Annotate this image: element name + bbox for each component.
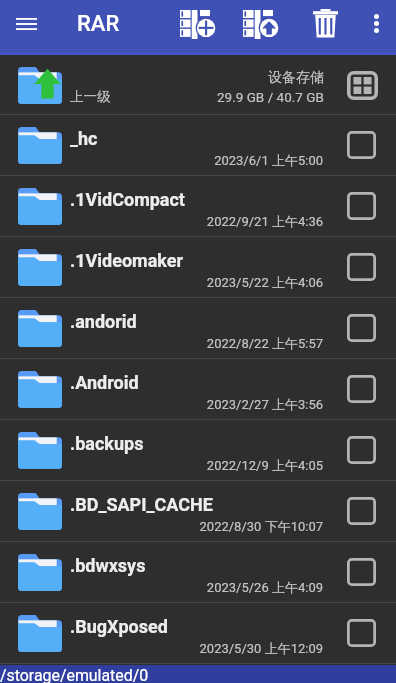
button[interactable]: .1VidCompact [0,176,396,237]
staticText: 2022/8/22 上午5:57 [70,335,323,351]
button[interactable]: .backups [0,420,396,481]
button[interactable]: Select item [347,420,396,481]
staticText: 2023/5/30 上午12:09 [70,640,323,656]
staticText: .BugXposed [70,616,168,637]
staticText: /storage/emulated/0 [0,666,149,683]
button[interactable]: 设备存储 [0,55,396,115]
staticText: .backups [70,433,144,454]
staticText: 2022/12/9 上午4:05 [70,457,323,473]
button[interactable]: Delete [303,0,347,47]
button[interactable]: Select item [347,603,396,664]
staticText: .BD_SAPI_CACHE [70,494,213,515]
button[interactable]: Extract archive [239,0,283,47]
button[interactable]: Switch to grid view [347,55,396,115]
staticText: 设备存储 [268,69,324,87]
staticText: _hc [70,128,98,149]
staticText: 2023/5/22 上午4:06 [70,274,323,290]
button[interactable]: .andorid [0,298,396,359]
button[interactable]: .1Videomaker [0,237,396,298]
button[interactable]: Select item [347,481,396,542]
staticText: 29.9 GB / 40.7 GB [217,89,324,105]
button[interactable]: Select item [347,542,396,603]
button[interactable]: .BugXposed [0,603,396,664]
staticText: .andorid [70,311,137,332]
button[interactable]: Add to archive [176,0,220,47]
button[interactable]: More options [356,0,396,47]
button[interactable]: .BD_SAPI_CACHE [0,481,396,542]
button[interactable]: Select item [347,115,396,176]
staticText: .1VidCompact [70,189,185,210]
button[interactable]: Menu [0,0,53,47]
button[interactable]: Select item [347,298,396,359]
staticText: RAR [77,11,120,37]
button[interactable]: Select item [347,237,396,298]
button[interactable]: Select item [347,176,396,237]
staticText: 2023/5/26 上午4:09 [70,579,323,595]
staticText: 2022/8/30 下午10:07 [70,518,323,534]
button[interactable]: .bdwxsys [0,542,396,603]
staticText: .Android [70,372,139,393]
staticText: 2023/6/1 上午5:00 [70,152,323,168]
button[interactable]: Select item [347,359,396,420]
staticText: 2023/2/27 上午3:56 [70,396,323,412]
button[interactable]: .Android [0,359,396,420]
button[interactable]: _hc [0,115,396,176]
staticText: .bdwxsys [70,555,146,576]
staticText: 2022/9/21 上午4:36 [70,213,323,229]
staticText: .1Videomaker [70,250,184,271]
staticText: 上一级 [70,88,111,105]
